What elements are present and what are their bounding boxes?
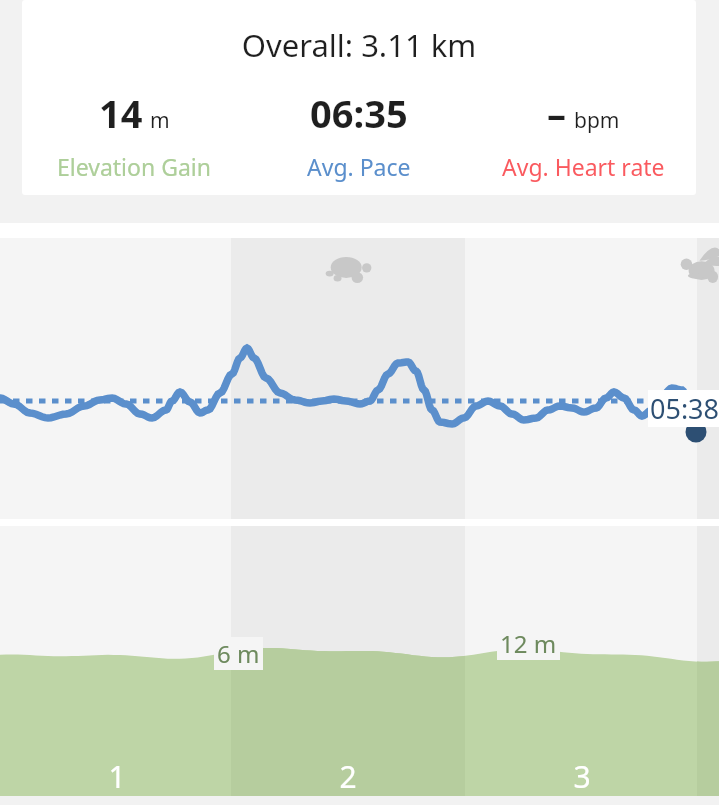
button[interactable]: 05:38 [0, 238, 719, 519]
staticText: 05:38 [650, 390, 719, 427]
staticText: 14 [99, 87, 143, 139]
staticText: 2 [326, 756, 370, 797]
button[interactable]: – [471, 87, 696, 182]
staticText: 6 m [217, 637, 260, 670]
button[interactable]: Kilometre 2 [326, 756, 370, 797]
button[interactable]: Kilometre 3 [560, 756, 604, 797]
staticText: bpm [574, 106, 620, 135]
staticText: 06:35 [310, 87, 408, 139]
staticText: 12 m [500, 627, 557, 660]
staticText: m [150, 106, 170, 135]
button[interactable]: 6 m [0, 526, 719, 796]
staticText: Avg. Heart rate [502, 151, 665, 182]
staticText: 3 [560, 756, 604, 797]
button[interactable]: 14 [22, 87, 246, 182]
staticText: Elevation Gain [57, 151, 211, 182]
staticText: Overall: 3.11 km [22, 24, 696, 66]
staticText: 1 [95, 756, 139, 797]
button[interactable]: Kilometre 1 [95, 756, 139, 797]
button[interactable]: Overall: 3.11 km [22, 0, 696, 195]
staticText: – [547, 87, 567, 139]
staticText: Avg. Pace [307, 151, 411, 182]
button[interactable]: 06:35 [246, 87, 471, 182]
